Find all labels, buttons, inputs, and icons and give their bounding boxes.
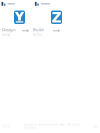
staticText: Design	[2, 27, 16, 32]
staticText: Refine	[33, 33, 43, 36]
button[interactable]: UX design app	[14, 10, 25, 24]
staticText: Ideate	[2, 33, 11, 36]
button[interactable]: Brand one	[1, 2, 15, 6]
button[interactable]: Brand two	[34, 2, 51, 6]
staticText: Designed and built with care · all right…	[23, 123, 79, 130]
staticText: Build	[33, 27, 44, 32]
staticText: Top	[93, 125, 98, 128]
staticText: 2024	[2, 125, 10, 128]
button[interactable]: Development app	[51, 10, 62, 24]
